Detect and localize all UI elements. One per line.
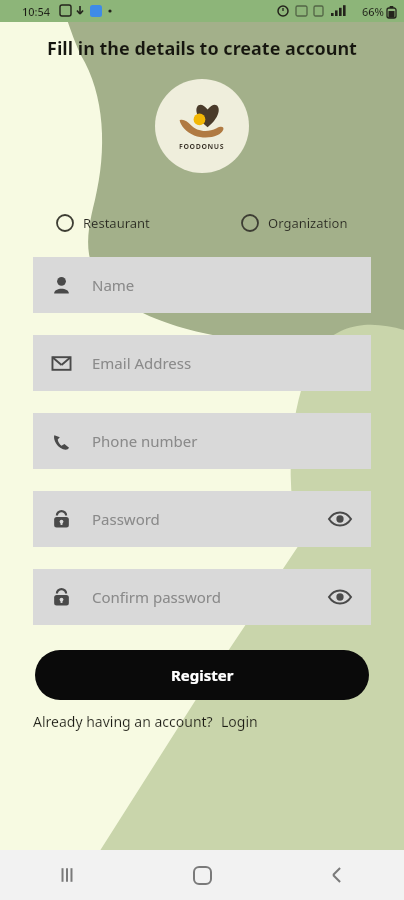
staticText: Confirm password (92, 587, 221, 607)
button[interactable]: Login (221, 712, 258, 731)
staticText: Register (171, 665, 234, 685)
staticText: FOODONUS (179, 142, 225, 152)
button[interactable]: Name (33, 257, 371, 313)
button[interactable]: Password (33, 491, 371, 547)
button[interactable]: Back (313, 851, 361, 899)
staticText: Already having an account? (33, 712, 213, 731)
button[interactable]: Phone number (33, 413, 371, 469)
button[interactable]: Organization (241, 211, 348, 235)
button[interactable]: Toggle password visibility (327, 506, 353, 532)
button[interactable]: Recent apps (43, 851, 91, 899)
button[interactable]: Confirm password (33, 569, 371, 625)
staticText: Name (92, 275, 135, 295)
staticText: Phone number (92, 431, 198, 451)
button[interactable]: Register (35, 650, 369, 700)
button[interactable]: Toggle password visibility (327, 584, 353, 610)
staticText: 66% (362, 4, 384, 19)
button[interactable]: Home (178, 851, 226, 899)
button[interactable]: Restaurant (56, 211, 150, 235)
staticText: Organization (268, 214, 348, 232)
staticText: Email Address (92, 353, 192, 373)
button[interactable]: Email Address (33, 335, 371, 391)
staticText: Password (92, 509, 160, 529)
staticText: Fill in the details to create account (47, 36, 357, 61)
staticText: Login (221, 712, 258, 731)
staticText: 10:54 (22, 4, 51, 19)
staticText: Restaurant (83, 214, 150, 232)
